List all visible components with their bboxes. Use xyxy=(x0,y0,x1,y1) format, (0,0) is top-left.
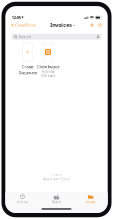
button[interactable]: Create xyxy=(17,43,38,75)
staticText: Browse xyxy=(86,200,96,204)
button[interactable]: Invoices xyxy=(50,20,75,30)
staticText: 1 item xyxy=(52,173,61,176)
button[interactable]: Shared xyxy=(39,191,73,206)
staticText: Shared xyxy=(52,200,61,204)
staticText: Yesterday xyxy=(42,70,54,73)
staticText: Client Invoice xyxy=(36,64,59,69)
staticText: Search xyxy=(18,34,30,39)
staticText: Recents xyxy=(17,200,28,204)
button[interactable]: Client Invoice xyxy=(38,43,58,78)
button[interactable]: iCloud Drive xyxy=(5,21,36,29)
button[interactable]: Search xyxy=(12,34,101,40)
button[interactable]: Browse xyxy=(74,191,108,206)
staticText: 12:05 xyxy=(12,15,21,20)
staticText: Invoices xyxy=(50,21,72,29)
staticText: iCloud Drive xyxy=(14,22,36,28)
button[interactable]: More options xyxy=(97,22,103,28)
staticText: Synced with iCloud xyxy=(43,177,70,181)
button[interactable]: Recents xyxy=(5,191,39,206)
staticText: Create xyxy=(22,64,34,69)
staticText: Document xyxy=(19,70,37,75)
button[interactable]: New item xyxy=(89,22,95,28)
staticText: 938 bytes xyxy=(41,74,55,78)
